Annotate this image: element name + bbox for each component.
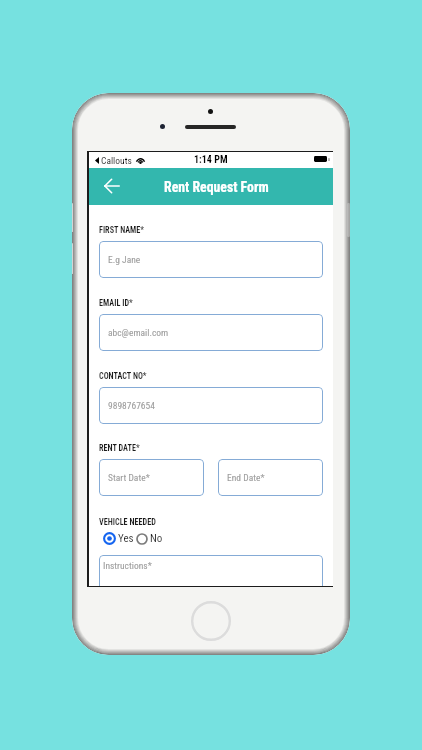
staticText: Rent Request Form [164,179,269,195]
staticText: VEHICLE NEEDED [99,517,156,527]
staticText: Start Date* [108,472,150,483]
button[interactable]: E.g Jane [99,241,323,278]
button[interactable]: No [136,532,163,545]
staticText: End Date* [227,472,265,483]
button[interactable]: Instructions* [99,555,323,586]
button[interactable]: Yes [103,532,134,545]
staticText: CONTACT NO* [99,371,147,381]
staticText: abc@email.com [108,327,169,338]
staticText: Instructions* [103,560,152,571]
staticText: FIRST NAME* [99,225,145,235]
staticText: 1:14 PM [194,154,228,166]
staticText: RENT DATE* [99,443,140,453]
staticText: E.g Jane [108,254,141,265]
staticText: No [150,532,163,545]
staticText: 9898767654 [108,400,155,411]
button[interactable]: End Date* [218,459,323,496]
staticText: Callouts [101,155,132,166]
button[interactable]: abc@email.com [99,314,323,351]
button[interactable]: Start Date* [99,459,204,496]
button[interactable]: 9898767654 [99,387,323,424]
staticText: Yes [118,532,134,545]
button[interactable]: Back [97,172,127,202]
staticText: EMAIL ID* [99,298,133,308]
